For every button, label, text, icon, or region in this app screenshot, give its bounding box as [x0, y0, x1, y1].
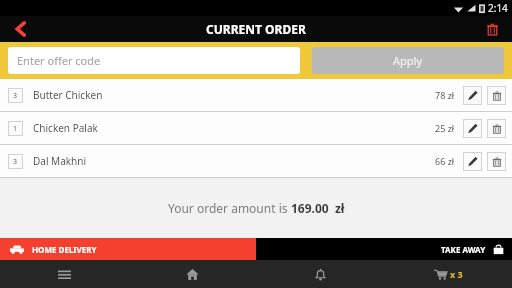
button[interactable]: Edit Chicken Palak: [463, 119, 482, 138]
staticText: HOME DELIVERY: [32, 244, 97, 255]
staticText: Butter Chicken: [33, 88, 103, 102]
staticText: Dal Makhni: [33, 154, 87, 168]
button[interactable]: Back: [0, 16, 40, 42]
button[interactable]: 1: [0, 112, 512, 144]
staticText: 2:14: [488, 1, 508, 15]
staticText: 3: [13, 157, 18, 167]
button[interactable]: TAKE AWAY: [256, 238, 512, 260]
button[interactable]: Remove Dal Makhni: [487, 152, 506, 171]
button[interactable]: 3: [0, 79, 512, 111]
button[interactable]: Apply: [312, 47, 504, 74]
button[interactable]: Notifications: [256, 260, 384, 288]
button[interactable]: Edit Butter Chicken: [463, 86, 482, 105]
button[interactable]: Remove Butter Chicken: [487, 86, 506, 105]
staticText: 25 zł: [435, 122, 455, 134]
button[interactable]: Delete order: [472, 16, 512, 42]
staticText: CURRENT ORDER: [206, 21, 306, 37]
button[interactable]: Home: [128, 260, 256, 288]
staticText: 66 zł: [435, 155, 455, 167]
staticText: x 3: [450, 268, 463, 280]
staticText: Your order amount is: [168, 200, 291, 216]
staticText: Chicken Palak: [33, 121, 98, 135]
button[interactable]: Cart, 3 items: [384, 260, 512, 288]
button[interactable]: Enter offer code: [8, 47, 300, 74]
staticText: 1: [13, 124, 18, 134]
staticText: TAKE AWAY: [441, 244, 486, 255]
staticText: 3: [13, 91, 18, 101]
staticText: 78 zł: [435, 89, 455, 101]
button[interactable]: Edit Dal Makhni: [463, 152, 482, 171]
staticText: Apply: [393, 53, 423, 68]
staticText: 169.00 zł: [291, 200, 345, 216]
staticText: Enter offer code: [17, 53, 101, 68]
button[interactable]: Menu: [0, 260, 128, 288]
button[interactable]: 3: [0, 145, 512, 177]
button[interactable]: HOME DELIVERY: [0, 238, 256, 260]
button[interactable]: Remove Chicken Palak: [487, 119, 506, 138]
